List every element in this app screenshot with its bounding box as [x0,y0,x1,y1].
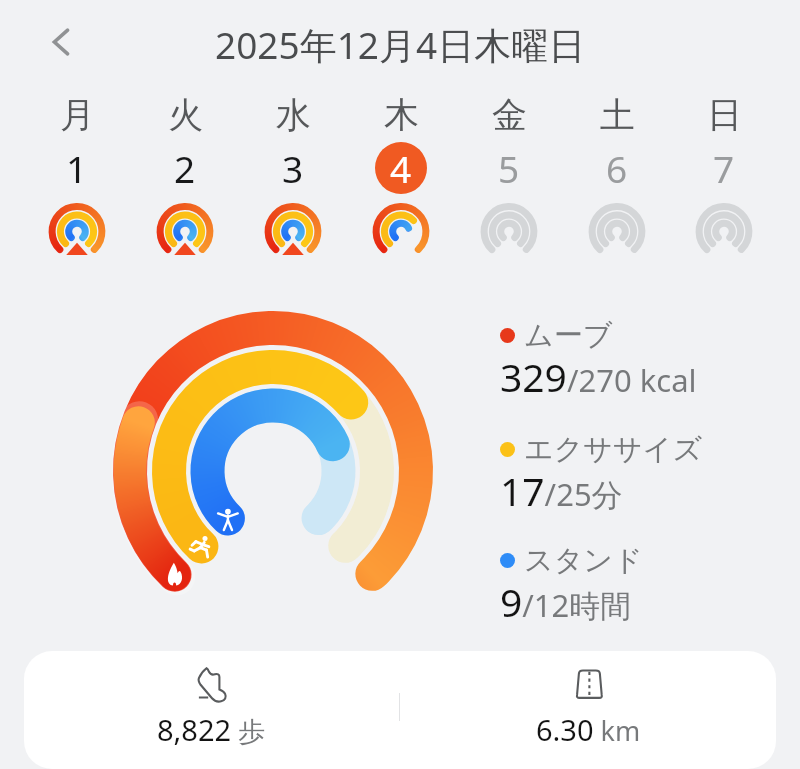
staticText: 6 [606,143,628,193]
button[interactable]: 6.30 km [400,651,776,762]
staticText: 金 [492,93,527,137]
staticText: 月 [60,93,95,137]
staticText: ムーブ [524,317,613,354]
staticText: 1 [66,143,88,193]
staticText: 水 [276,93,311,137]
button[interactable]: 木 [347,93,455,263]
button[interactable]: 水 [239,93,347,263]
staticText: 329/270 kcal [500,350,697,403]
staticText: 日 [707,93,742,137]
staticText: 5 [498,143,520,193]
staticText: 2025年12月4日木曜日 [215,19,586,70]
staticText: 7 [713,143,735,193]
staticText: エクササイズ [524,431,703,468]
button[interactable]: ムーブ [500,315,800,425]
button[interactable]: エクササイズ [500,429,800,539]
button[interactable]: 月 [23,93,131,263]
staticText: 9/12時間 [500,575,632,628]
staticText: 3 [282,143,304,193]
staticText: 火 [168,93,203,137]
staticText: 17/25分 [500,464,623,517]
button[interactable]: 日 [671,93,777,263]
button[interactable]: 火 [131,93,239,263]
staticText: スタンド [524,542,643,579]
button[interactable]: スタンド [500,540,800,650]
staticText: 2 [174,143,196,193]
staticText: 6.30 km [536,710,641,749]
button[interactable]: 8,822 歩 [24,651,399,762]
staticText: 4 [390,143,412,193]
staticText: 土 [600,93,635,137]
button[interactable]: Back [33,14,89,70]
staticText: 木 [384,93,419,137]
button[interactable]: 土 [563,93,671,263]
button[interactable]: 金 [455,93,563,263]
staticText: 8,822 歩 [157,710,266,749]
